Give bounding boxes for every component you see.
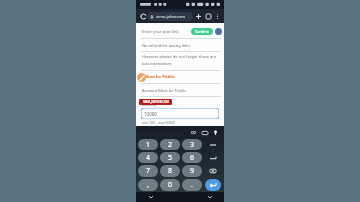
button[interactable]: Back — [136, 192, 166, 202]
button[interactable]: 2 — [160, 139, 180, 150]
button[interactable]: 7 — [138, 165, 158, 177]
staticText: 9 — [190, 166, 195, 176]
button[interactable]: del — [205, 165, 221, 177]
button[interactable]: minus — [205, 139, 221, 150]
staticText: min 100 - max 50000 — [142, 120, 176, 125]
staticText: 3 — [190, 140, 195, 150]
staticText: 0 — [168, 180, 173, 190]
button[interactable]: 0 — [160, 179, 180, 191]
button[interactable]: 1 — [138, 139, 158, 150]
button[interactable]: tab — [205, 152, 221, 163]
staticText: 10000 — [144, 111, 157, 117]
button[interactable]: Confirm — [191, 28, 213, 35]
staticText: 6 — [190, 153, 195, 163]
staticText: No refund for wrong links — [142, 43, 191, 48]
button[interactable]: 8 — [160, 165, 180, 177]
staticText: 7 — [146, 166, 151, 176]
button[interactable]: More options — [213, 12, 221, 20]
staticText: 2 — [168, 140, 173, 150]
staticText: Enter your post link — [142, 29, 179, 34]
button[interactable]: 6 — [182, 152, 202, 163]
staticText: Account Must be Public — [142, 88, 186, 93]
button[interactable]: . — [182, 179, 202, 191]
staticText: smm-juber.com — [156, 14, 186, 19]
button[interactable]: Voice input — [211, 128, 220, 137]
button[interactable]: 10000 — [141, 108, 219, 119]
button[interactable]: 9 — [182, 165, 202, 177]
button[interactable]: Tabs — [203, 11, 213, 21]
staticText: Quantity — [142, 102, 157, 107]
button[interactable]: SMM-JUPITER.COM — [139, 99, 172, 105]
button[interactable]: , — [138, 179, 158, 191]
staticText: 8 — [168, 166, 173, 176]
staticText: SMM-JUPITER.COM — [143, 100, 169, 104]
staticText: . — [191, 180, 193, 190]
button[interactable]: smm-juber.com — [147, 12, 193, 21]
staticText: , — [147, 180, 149, 190]
button[interactable]: Reload — [139, 12, 147, 20]
staticText: 5 — [168, 153, 173, 163]
staticText: However please do not forget these are j… — [142, 54, 220, 66]
button[interactable]: New tab — [193, 11, 203, 21]
staticText: 4 — [146, 153, 151, 163]
button[interactable]: 3 — [182, 139, 202, 150]
button[interactable]: enter — [205, 179, 221, 191]
staticText: Confirm — [195, 29, 210, 34]
button[interactable]: Recents — [195, 192, 224, 202]
button[interactable]: Warning — [137, 73, 146, 82]
button[interactable]: Keyboard — [200, 128, 209, 137]
button[interactable]: 5 — [160, 152, 180, 163]
staticText: Must be Public — [140, 74, 175, 80]
button[interactable]: Profile — [215, 28, 222, 35]
button[interactable]: Emoji — [189, 128, 198, 137]
staticText: 1 — [146, 140, 151, 150]
button[interactable]: 4 — [138, 152, 158, 163]
